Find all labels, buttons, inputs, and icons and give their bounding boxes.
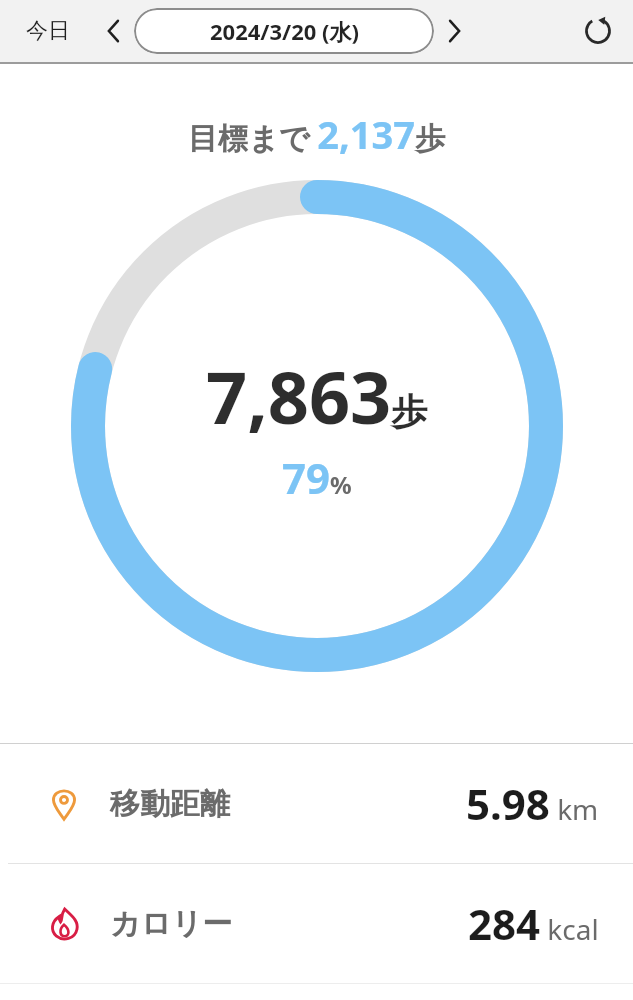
button[interactable]: Next day [436, 13, 472, 49]
other: Distance [44, 784, 84, 824]
staticText: 今日 [26, 17, 70, 45]
button[interactable]: Calories [0, 864, 633, 983]
button[interactable]: Refresh [577, 10, 619, 52]
staticText: 7,863歩 [206, 347, 428, 445]
button[interactable]: Distance [0, 744, 633, 863]
button[interactable]: 今日 [14, 9, 82, 53]
staticText: 移動距離 [110, 785, 230, 823]
button[interactable]: Previous day [96, 13, 132, 49]
staticText: 2024/3/20 (水) [210, 16, 359, 46]
staticText: カロリー [110, 905, 233, 943]
button[interactable]: 2024/3/20 (水) [134, 8, 434, 54]
staticText: 284 kcal [468, 895, 599, 952]
staticText: 79% [282, 449, 352, 506]
staticText: 5.98 km [466, 775, 599, 832]
other: Calories [44, 904, 84, 944]
staticText: 目標まで 2,137歩 [188, 108, 445, 160]
